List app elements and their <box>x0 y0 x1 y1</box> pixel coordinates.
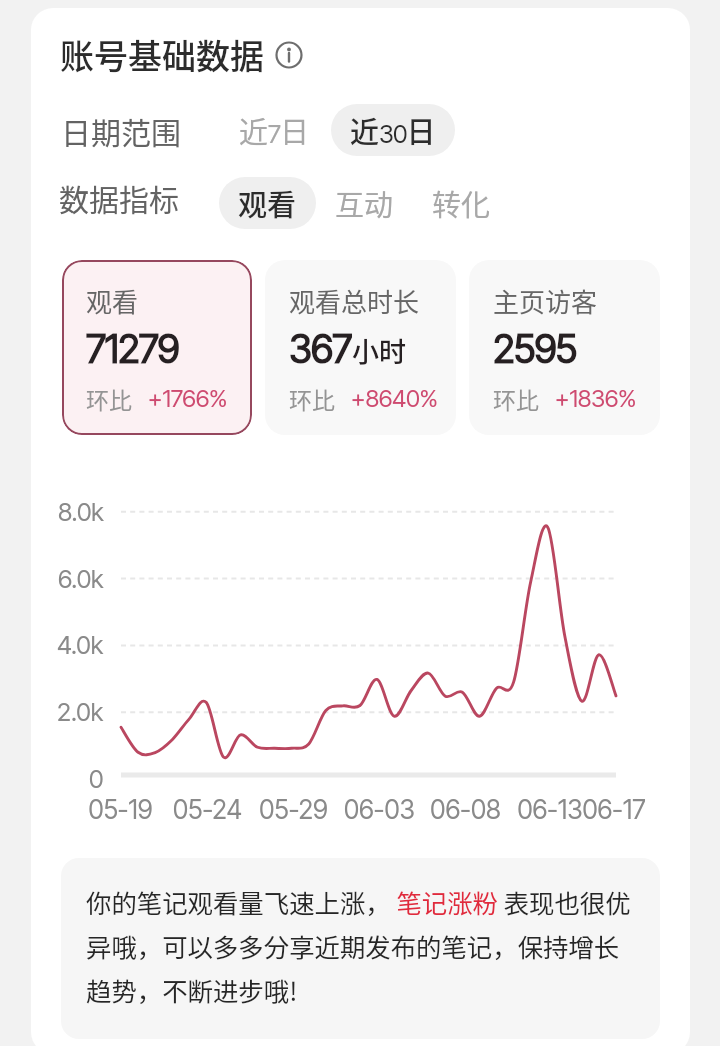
staticText: 06-08 <box>430 794 501 825</box>
staticText: 2.0k <box>57 697 104 727</box>
staticText: +8640% <box>351 384 438 413</box>
staticText: 06-03 <box>344 794 415 825</box>
button[interactable]: 观看总时长 <box>265 260 456 435</box>
staticText: 05-19 <box>88 794 153 825</box>
staticText: 你的笔记观看量飞速上涨， 笔记涨粉 表现也很优异哦，可以多多分享近期发布的笔记，… <box>86 884 633 1008</box>
staticText: 05-24 <box>173 794 242 825</box>
staticText: 环比 <box>86 382 132 415</box>
staticText: 互动 <box>335 182 394 224</box>
staticText: 数据指标 <box>59 176 179 219</box>
staticText: 环比 <box>289 382 335 415</box>
staticText: +1836% <box>555 384 637 413</box>
staticText: 观看 <box>86 282 139 320</box>
staticText: 8.0k <box>58 497 104 527</box>
button[interactable]: Info <box>275 41 303 69</box>
staticText: 近7日 <box>239 109 310 151</box>
staticText: 2595 <box>493 325 577 372</box>
button[interactable]: 互动 <box>316 177 413 229</box>
button[interactable]: 主页访客 <box>469 260 660 435</box>
staticText: 账号基础数据 <box>60 30 264 79</box>
staticText: 近30日 <box>350 109 436 151</box>
staticText: 06-17 <box>582 794 646 825</box>
staticText: 观看总时长 <box>289 282 420 320</box>
staticText: 6.0k <box>58 564 104 594</box>
staticText: 转化 <box>432 182 491 224</box>
staticText: 71279 <box>86 325 179 372</box>
staticText: 主页访客 <box>493 282 598 320</box>
staticText: 观看 <box>238 182 297 224</box>
staticText: 4.0k <box>57 630 104 660</box>
staticText: 06-13 <box>517 794 583 825</box>
staticText: 05-29 <box>259 794 328 825</box>
staticText: 小时 <box>352 331 406 370</box>
staticText: 0 <box>89 764 104 794</box>
button[interactable]: 观看 <box>62 260 252 435</box>
button[interactable]: 近7日 <box>220 104 329 156</box>
button[interactable]: 观看 <box>219 177 316 229</box>
staticText: 日期范围 <box>61 109 181 152</box>
button[interactable]: 转化 <box>413 177 510 229</box>
staticText: 367 <box>289 325 352 372</box>
staticText: 环比 <box>493 382 539 415</box>
button[interactable]: 近30日 <box>331 104 455 156</box>
staticText: +1766% <box>148 384 228 413</box>
